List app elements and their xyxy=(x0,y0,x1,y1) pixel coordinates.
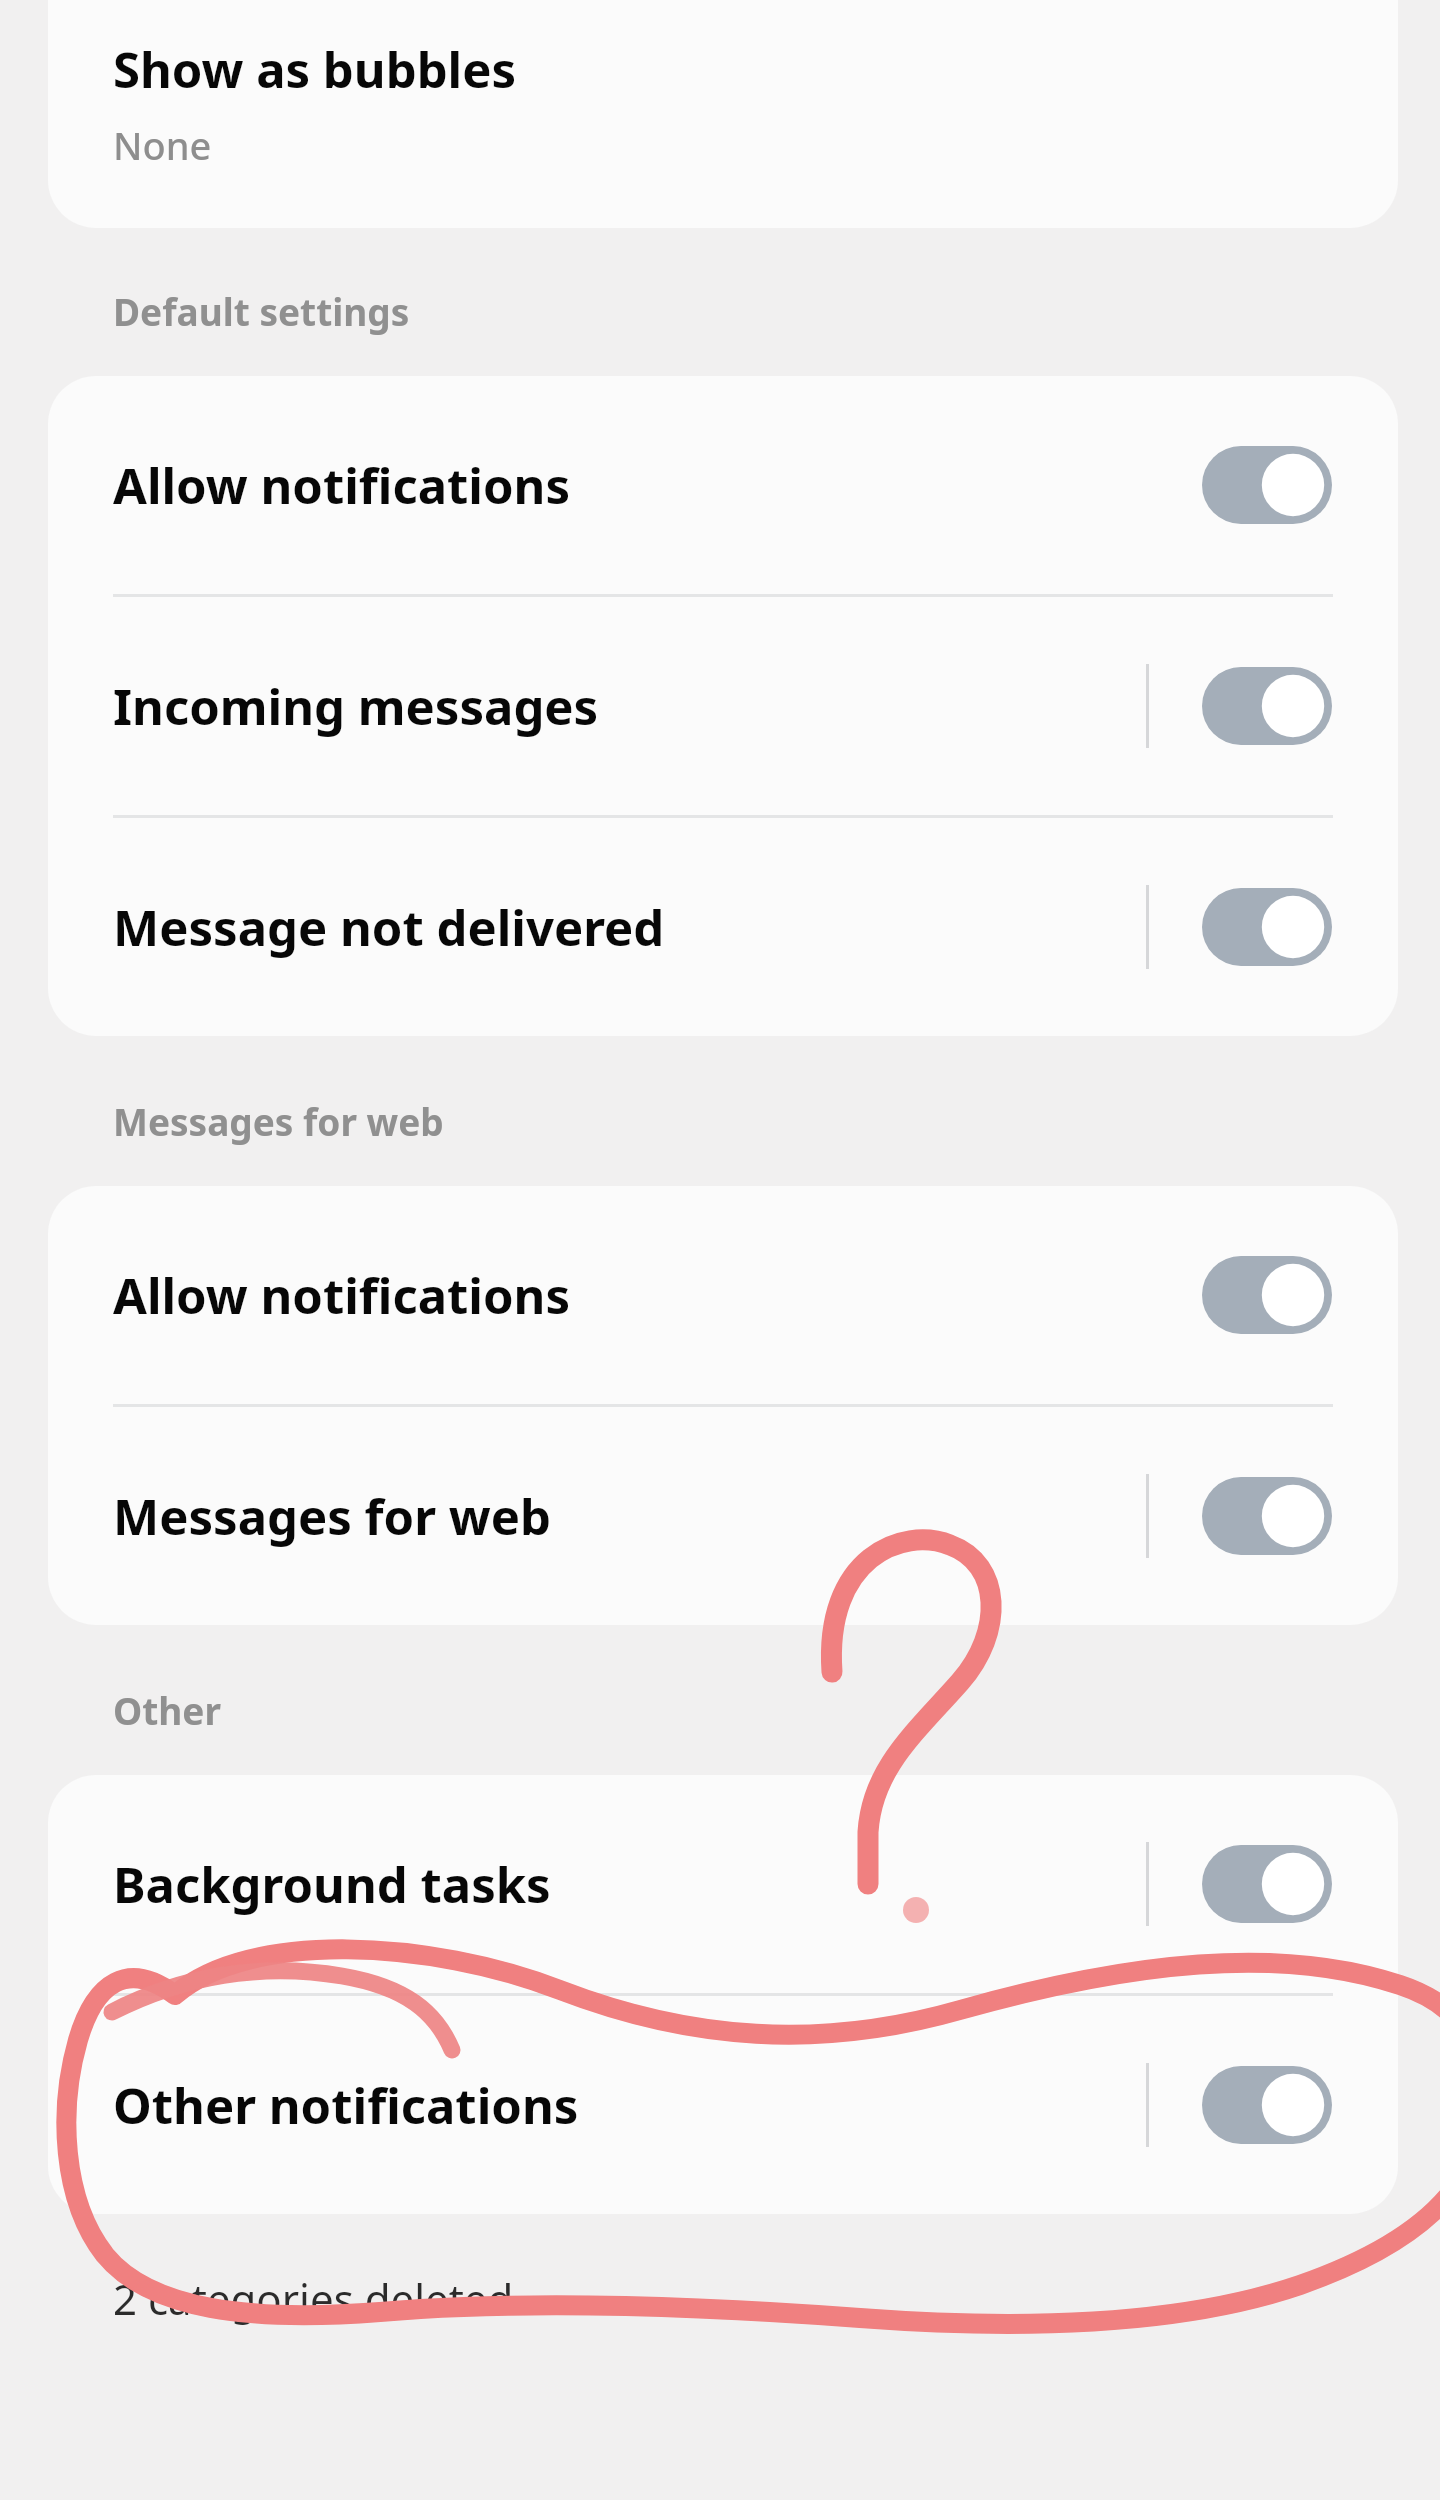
staticText: Background tasks xyxy=(113,1851,551,1918)
button[interactable]: Toggle, on xyxy=(1202,888,1332,966)
staticText: Other xyxy=(113,1685,222,1735)
staticText: Other notifications xyxy=(113,2072,579,2139)
button[interactable]: Show as bubbles xyxy=(48,0,1398,228)
staticText: Messages for web xyxy=(113,1096,444,1146)
button[interactable]: Allow notifications xyxy=(48,376,1398,594)
button[interactable]: Background tasks xyxy=(48,1775,1398,1993)
button[interactable]: Toggle, on xyxy=(1202,2066,1332,2144)
button[interactable]: Incoming messages xyxy=(48,597,1398,815)
staticText: None xyxy=(113,119,212,171)
button[interactable]: Messages for web xyxy=(48,1407,1398,1625)
button[interactable]: Allow notifications xyxy=(48,1186,1398,1404)
staticText: Allow notifications xyxy=(113,452,571,519)
button[interactable]: Toggle, on xyxy=(1202,1256,1332,1334)
button[interactable]: Message not delivered xyxy=(48,818,1398,1036)
button[interactable]: Toggle, on xyxy=(1202,446,1332,524)
button[interactable]: Toggle, on xyxy=(1202,667,1332,745)
staticText: Allow notifications xyxy=(113,1262,571,1329)
button[interactable]: Other notifications xyxy=(48,1996,1398,2214)
button[interactable]: Toggle, on xyxy=(1202,1477,1332,1555)
staticText: Message not delivered xyxy=(113,894,665,961)
staticText: Messages for web xyxy=(113,1483,551,1550)
staticText: Show as bubbles xyxy=(113,36,517,103)
staticText: Default settings xyxy=(113,286,410,336)
staticText: Incoming messages xyxy=(113,673,599,740)
button[interactable]: Toggle, on xyxy=(1202,1845,1332,1923)
staticText: 2 categories deleted xyxy=(113,2270,514,2327)
